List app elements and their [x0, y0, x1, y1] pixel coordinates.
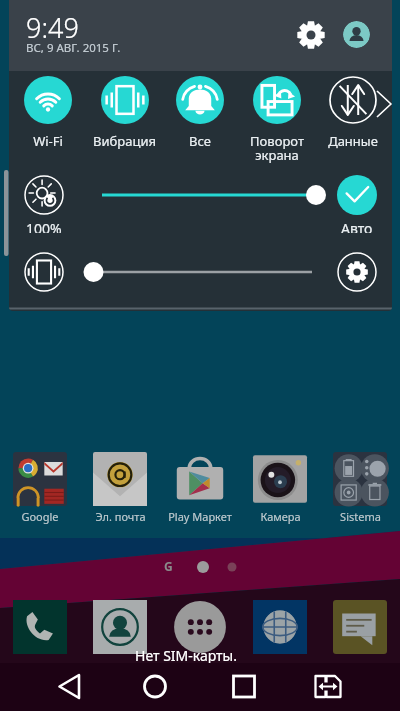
- button[interactable]: Phone: [13, 600, 67, 654]
- button[interactable]: Play Маркет: [160, 452, 240, 526]
- staticText: ВС, 9 АВГ. 2015 Г.: [26, 40, 121, 56]
- staticText: Sistema: [340, 509, 381, 524]
- button[interactable]: Эл. почта: [80, 452, 160, 526]
- staticText: Поворот экрана: [250, 132, 304, 164]
- staticText: G: [164, 558, 173, 574]
- staticText: Wi-Fi: [33, 132, 63, 150]
- staticText: Нет SIM-карты.: [135, 646, 237, 665]
- button[interactable]: Brightness: [24, 175, 64, 233]
- button[interactable]: Messages: [333, 600, 387, 654]
- button[interactable]: Browser: [253, 600, 307, 654]
- button[interactable]: Auto brightness: [337, 175, 377, 233]
- button[interactable]: Back: [44, 663, 96, 711]
- staticText: Вибрация: [93, 132, 156, 150]
- button[interactable]: Поворот экрана: [241, 76, 313, 164]
- button[interactable]: Switch app: [302, 663, 354, 711]
- button[interactable]: Contacts: [93, 600, 147, 654]
- staticText: Play Маркет: [168, 509, 232, 524]
- button[interactable]: Sound settings: [337, 252, 377, 292]
- staticText: Все: [189, 132, 211, 150]
- staticText: Эл. почта: [95, 509, 146, 524]
- button[interactable]: Sistema: [320, 452, 400, 526]
- button[interactable]: Вибрация: [88, 76, 160, 164]
- button[interactable]: Wi-Fi: [12, 76, 84, 164]
- button[interactable]: Recents: [218, 663, 270, 711]
- staticText: Данные: [328, 132, 378, 150]
- button[interactable]: Apps: [173, 600, 227, 654]
- button[interactable]: Next page: [375, 88, 392, 120]
- button[interactable]: Settings: [293, 17, 329, 53]
- button[interactable]: Ring mode: [24, 252, 64, 292]
- button[interactable]: Google Now: [164, 558, 178, 576]
- button[interactable]: User: [343, 21, 370, 48]
- button[interactable]: Все: [164, 76, 236, 164]
- button[interactable]: Данные: [317, 76, 389, 164]
- staticText: 100%: [26, 219, 62, 233]
- staticText: Камера: [260, 509, 301, 524]
- button[interactable]: Камера: [240, 452, 320, 526]
- staticText: Авто: [341, 219, 373, 233]
- button[interactable]: Home: [129, 663, 181, 711]
- staticText: 9:49: [26, 9, 79, 46]
- staticText: Google: [21, 509, 59, 524]
- button[interactable]: Google: [0, 452, 80, 526]
